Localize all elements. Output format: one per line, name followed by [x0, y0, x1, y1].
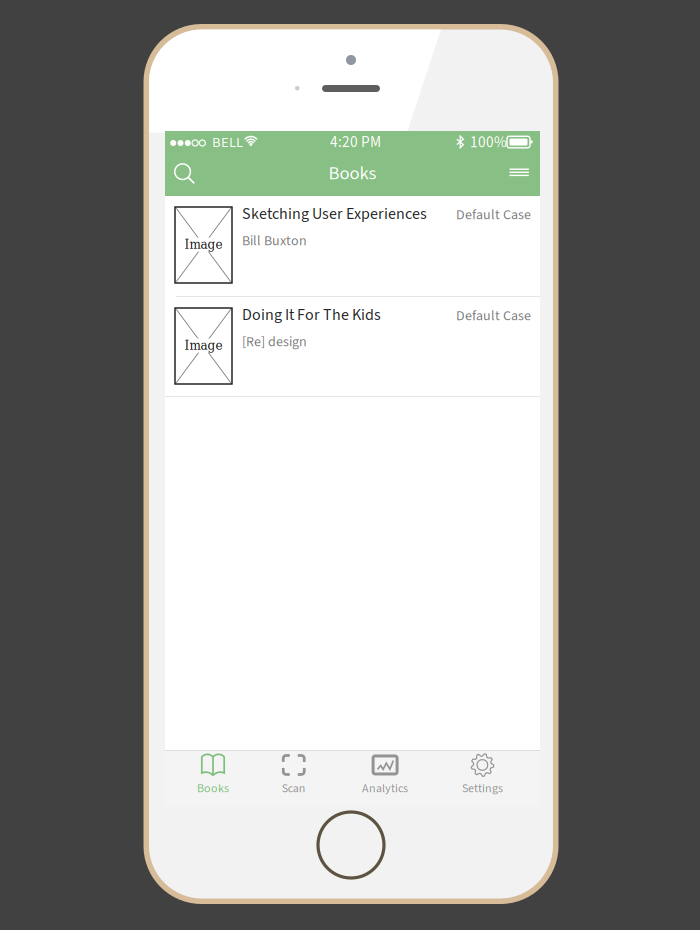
button[interactable]: Scan	[259, 754, 329, 796]
staticText: Doing It For The Kids	[242, 304, 381, 326]
staticText: Default Case	[456, 205, 531, 225]
button[interactable]: Image	[165, 297, 540, 397]
button[interactable]: Menu	[497, 155, 541, 190]
staticText: Books	[197, 780, 229, 797]
staticText: 4:20 PM	[330, 131, 381, 153]
staticText: Default Case	[456, 306, 531, 326]
button[interactable]: Books	[178, 754, 248, 796]
staticText: Bill Buxton	[242, 231, 307, 251]
staticText: Scan	[282, 780, 306, 797]
staticText: [Re] design	[242, 332, 307, 352]
button[interactable]: Analytics	[350, 754, 420, 796]
staticText: 100%	[470, 131, 507, 153]
staticText: Image	[184, 339, 222, 353]
staticText: BELL	[212, 132, 243, 153]
button[interactable]: Settings	[447, 754, 517, 796]
staticText: Image	[184, 238, 222, 252]
button[interactable]: Search	[163, 157, 207, 192]
button[interactable]: Image	[165, 196, 540, 296]
staticText: Books	[328, 160, 376, 187]
staticText: Analytics	[362, 780, 408, 797]
staticText: Settings	[462, 780, 503, 797]
staticText: Sketching User Experiences	[242, 203, 427, 225]
